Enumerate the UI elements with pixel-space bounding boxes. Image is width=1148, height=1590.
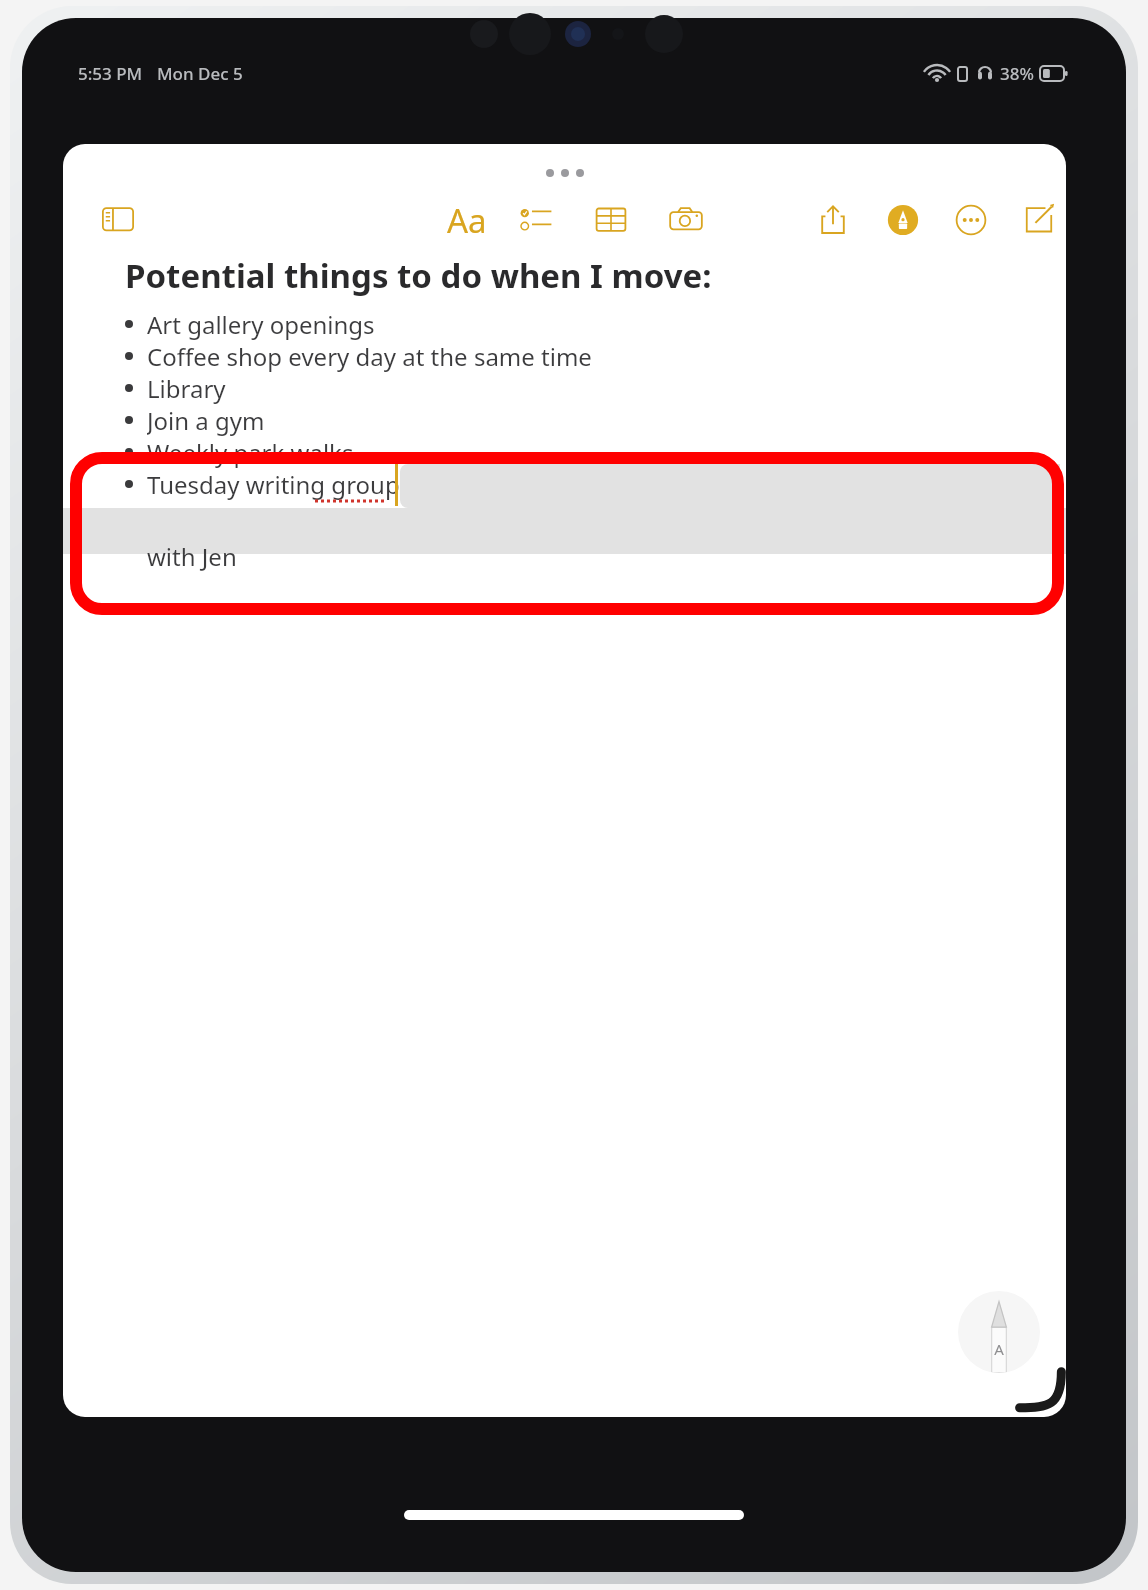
- button[interactable]: New note: [1011, 192, 1066, 248]
- staticText: Coffee shop every day at the same time: [147, 340, 592, 372]
- staticText: Library: [147, 372, 226, 404]
- staticText: Mon Dec 5: [157, 62, 243, 85]
- staticText: with Jen: [147, 540, 237, 573]
- button[interactable]: Share: [805, 192, 861, 248]
- staticText: Tuesday writing group: [147, 468, 400, 500]
- staticText: Art gallery openings: [147, 308, 375, 340]
- button[interactable]: Multitasking controls: [540, 163, 590, 183]
- staticText: Weekly park walks: [147, 436, 354, 468]
- button[interactable]: More: [943, 192, 999, 248]
- staticText: Potential things to do when I move:: [125, 253, 712, 298]
- staticText: A: [994, 1339, 1004, 1359]
- button[interactable]: Text format: [431, 192, 503, 248]
- button[interactable]: Checklist: [509, 192, 565, 248]
- button[interactable]: Show sidebar: [90, 192, 146, 248]
- staticText: 5:53 PM: [78, 62, 143, 85]
- staticText: 38%: [1000, 62, 1034, 85]
- button[interactable]: Table: [583, 192, 639, 248]
- staticText: Join a gym: [147, 404, 265, 436]
- staticText: Aa: [447, 198, 487, 243]
- button[interactable]: Apple Pencil tools: [958, 1291, 1040, 1373]
- button[interactable]: Insert photo: [658, 192, 714, 248]
- button[interactable]: Markup: [875, 192, 931, 248]
